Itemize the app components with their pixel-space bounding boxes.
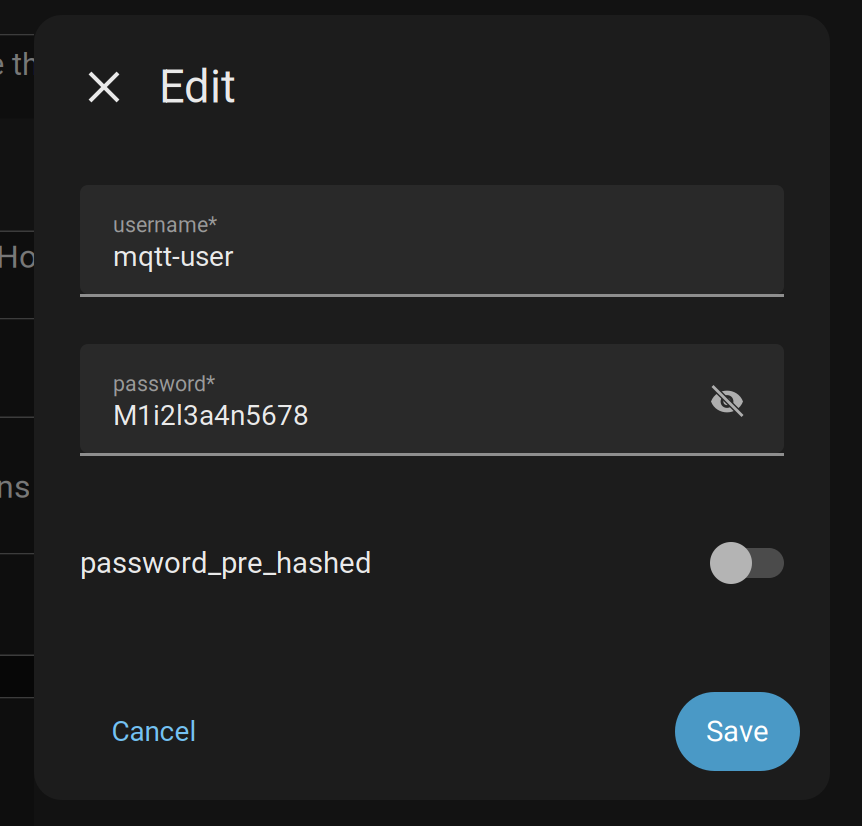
staticText: Save xyxy=(706,714,769,749)
staticText: Cancel xyxy=(111,715,196,748)
staticText: mqtt-user xyxy=(113,240,233,273)
button[interactable]: Save xyxy=(675,692,800,771)
staticText: e th xyxy=(0,46,39,82)
button[interactable]: Close xyxy=(90,73,118,101)
staticText: Edit xyxy=(159,60,236,113)
button[interactable]: password_pre_hashed xyxy=(710,542,784,584)
button[interactable]: Show password xyxy=(711,385,743,417)
staticText: M1i2l3a4n5678 xyxy=(113,399,309,432)
staticText: username* xyxy=(113,212,217,237)
staticText: Hom xyxy=(0,238,65,275)
staticText: ns xyxy=(0,468,31,505)
staticText: password_pre_hashed xyxy=(80,546,372,580)
staticText: password* xyxy=(113,371,215,396)
button[interactable]: Cancel xyxy=(95,703,213,759)
